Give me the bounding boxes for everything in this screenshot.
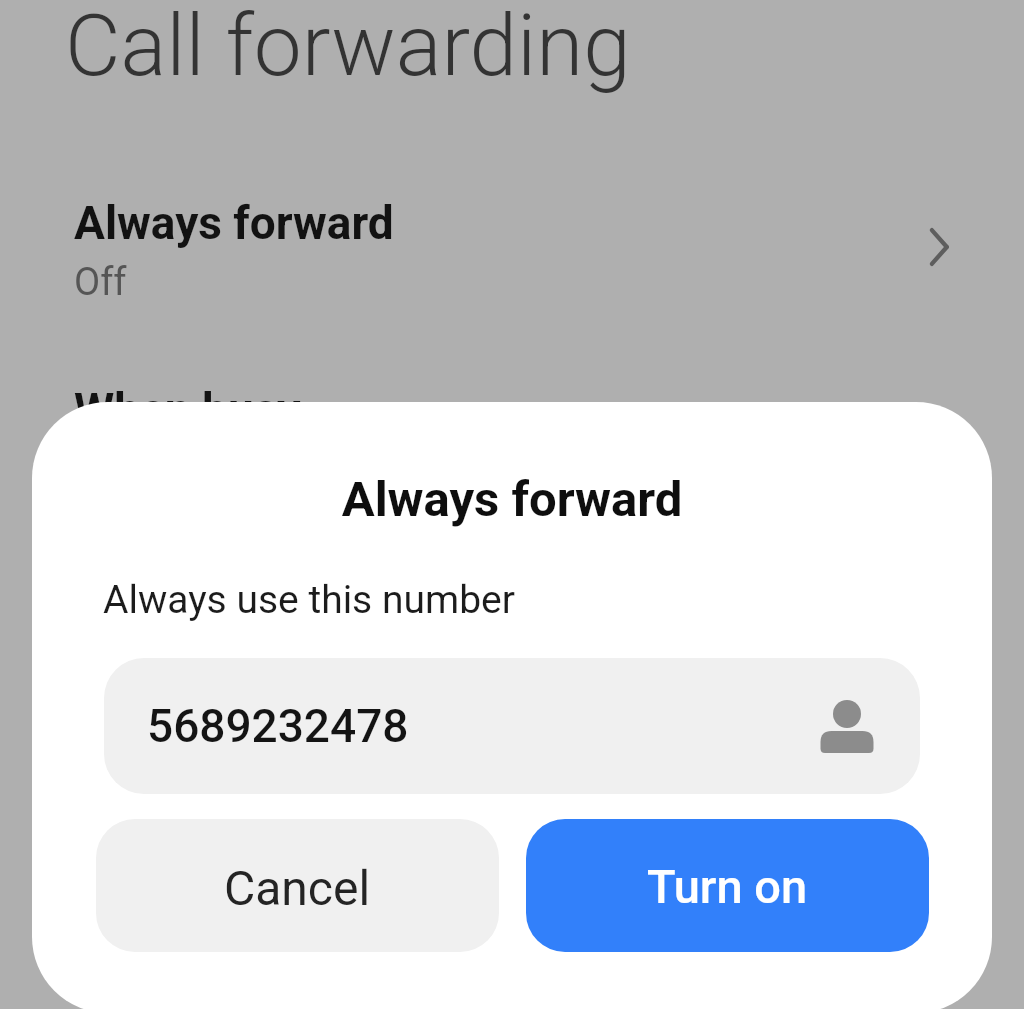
- button[interactable]: Turn on: [526, 819, 929, 952]
- staticText: Cancel: [224, 860, 371, 916]
- button[interactable]: Cancel: [96, 819, 499, 952]
- button[interactable]: When busy: [0, 361, 1024, 481]
- button[interactable]: Open always forward: [908, 218, 972, 282]
- staticText: When busy: [74, 383, 301, 437]
- staticText: Always forward: [74, 196, 394, 250]
- button[interactable]: 5689232478: [104, 658, 920, 794]
- button[interactable]: Always forward: [0, 180, 1024, 320]
- staticText: 5689232478: [147, 699, 409, 753]
- button[interactable]: Choose contact: [799, 678, 895, 774]
- staticText: Turn on: [647, 859, 808, 914]
- staticText: Off: [74, 260, 127, 305]
- staticText: Call forwarding: [65, 0, 631, 96]
- staticText: Always forward: [32, 471, 992, 528]
- staticText: Always use this number: [103, 577, 515, 623]
